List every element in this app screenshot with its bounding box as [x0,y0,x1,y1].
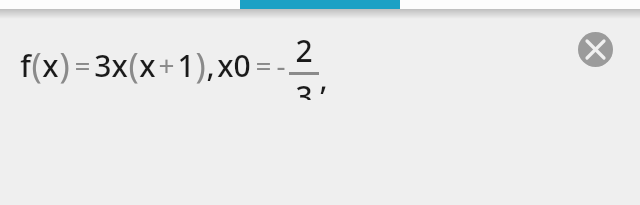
staticText: x [139,45,156,86]
staticText: ( [31,42,42,88]
staticText: - [276,46,286,84]
staticText: x [42,45,59,86]
staticText: 3 [295,76,313,100]
button[interactable]: Close [578,32,613,67]
staticText: ( [128,42,139,88]
staticText: 2 [295,30,313,71]
staticText: , [206,45,215,86]
staticText: = [255,46,272,84]
staticText: 3x [94,45,128,86]
staticText: 1 [177,45,195,86]
staticText: = [74,46,91,84]
staticText: f [20,45,31,86]
staticText: ) [195,42,206,88]
staticText: x0 [217,45,251,86]
staticText: + [158,46,175,84]
staticText: ) [59,42,70,88]
staticText: , [319,58,328,99]
